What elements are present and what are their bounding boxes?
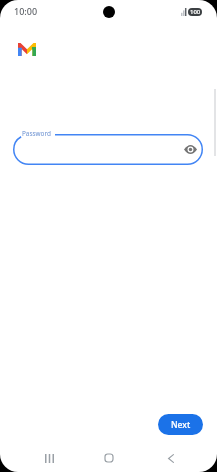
button[interactable]: Back [156, 445, 186, 471]
staticText: Next [171, 419, 191, 431]
staticText: Password [22, 129, 51, 138]
button[interactable]: Show password [181, 140, 199, 158]
staticText: 100 [190, 8, 201, 16]
button[interactable]: Next [158, 414, 203, 435]
button[interactable] [13, 134, 203, 165]
button[interactable]: Recent apps [34, 445, 64, 471]
staticText: 10:00 [14, 5, 38, 17]
button[interactable]: Home [94, 445, 124, 471]
